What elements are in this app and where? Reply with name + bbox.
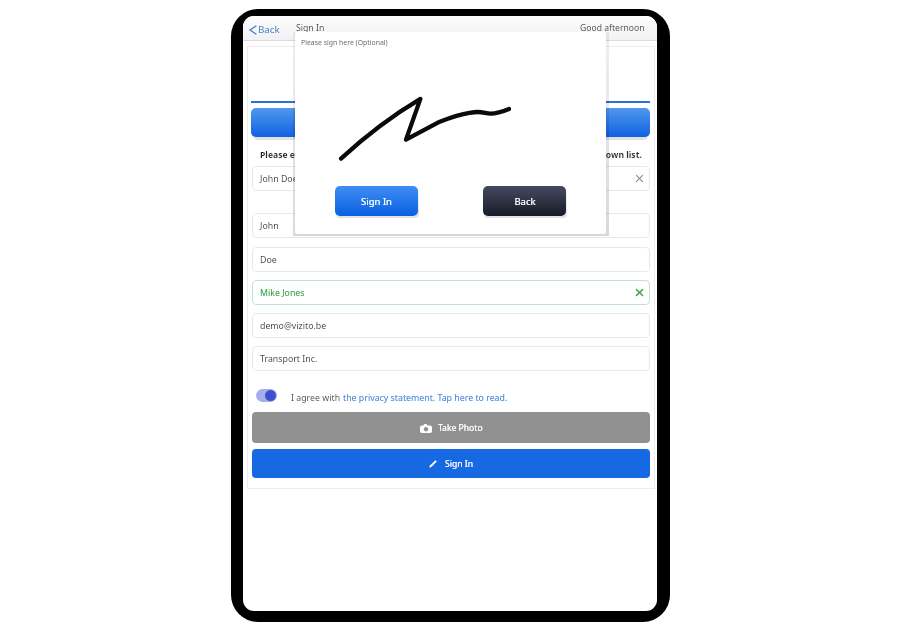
staticText: Sign In bbox=[445, 458, 473, 470]
button[interactable]: the privacy statement. Tap here to read. bbox=[343, 392, 508, 404]
button[interactable]: Back bbox=[248, 21, 282, 38]
staticText: Doe bbox=[260, 254, 277, 266]
staticText: Please enter your details in the fields … bbox=[260, 149, 642, 161]
button[interactable]: Back bbox=[483, 186, 566, 216]
staticText: Please sign here (Optional) bbox=[301, 38, 388, 47]
staticText: Good afternoon bbox=[580, 22, 645, 34]
staticText: John bbox=[260, 220, 279, 232]
button[interactable]: demo@vizito.be bbox=[252, 313, 650, 338]
staticText: demo@vizito.be bbox=[260, 320, 327, 332]
button[interactable] bbox=[251, 108, 650, 137]
staticText: Sign In bbox=[296, 22, 325, 34]
staticText: Transport Inc. bbox=[260, 353, 318, 365]
button[interactable]: Doe bbox=[252, 247, 650, 272]
button[interactable]: Sign In bbox=[252, 449, 650, 478]
button[interactable]: Take Photo bbox=[252, 412, 650, 443]
button[interactable]: Mike Jones bbox=[252, 280, 650, 305]
button[interactable]: John Doe bbox=[252, 166, 650, 191]
staticText: Back bbox=[514, 195, 536, 208]
button[interactable]: John bbox=[252, 213, 650, 238]
staticText: Sign In bbox=[361, 195, 392, 208]
staticText: Mike Jones bbox=[260, 287, 305, 299]
staticText: I agree with bbox=[291, 392, 343, 404]
staticText: Take Photo bbox=[438, 422, 483, 434]
button[interactable]: Clear bbox=[634, 287, 645, 298]
button[interactable]: Sign In bbox=[335, 186, 418, 216]
staticText: Back bbox=[258, 23, 280, 36]
button[interactable]: Clear bbox=[634, 173, 645, 184]
button[interactable]: Agree toggle bbox=[256, 389, 277, 402]
staticText: John Doe bbox=[260, 173, 298, 185]
button[interactable]: Transport Inc. bbox=[252, 346, 650, 371]
